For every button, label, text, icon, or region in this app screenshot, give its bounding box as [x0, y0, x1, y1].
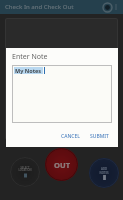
staticText: SUBMIT — [90, 133, 109, 140]
button[interactable]: My Notes — [12, 65, 112, 123]
button[interactable]: More options — [111, 2, 121, 12]
button[interactable]: CANCEL — [58, 131, 83, 142]
staticText: ADD NOTES — [99, 167, 109, 174]
staticText: Check In and Check Out — [5, 3, 74, 11]
button[interactable]: Timer — [102, 2, 113, 13]
button[interactable]: Add notes — [89, 158, 119, 188]
staticText: OUT — [54, 160, 70, 170]
staticText: YOUR CURRENT STATUS IS — [5, 54, 118, 61]
button[interactable]: SUBMIT — [87, 131, 112, 142]
staticText: CANCEL — [61, 133, 80, 140]
staticText: SELECT LOCATION — [18, 166, 32, 172]
button[interactable]: Select location — [10, 157, 40, 187]
staticText: My Notes — [15, 67, 42, 74]
staticText: Enter Note — [12, 52, 48, 62]
button[interactable]: Clock out — [45, 148, 78, 181]
